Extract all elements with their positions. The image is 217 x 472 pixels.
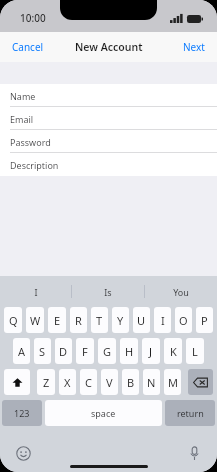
button[interactable]: Email	[0, 107, 217, 130]
button[interactable]: K	[164, 338, 182, 364]
staticText: Email	[10, 113, 34, 125]
button[interactable]: A	[13, 338, 30, 364]
staticText: H	[125, 344, 134, 359]
button[interactable]: Emoji	[14, 444, 32, 462]
button[interactable]: L	[186, 338, 204, 364]
staticText: R	[75, 313, 82, 328]
staticText: S	[39, 344, 46, 359]
button[interactable]: Description	[0, 153, 217, 176]
staticText: L	[192, 344, 198, 359]
button[interactable]: U	[133, 307, 150, 333]
staticText: X	[64, 375, 71, 390]
button[interactable]: Y	[112, 307, 129, 333]
staticText: B	[127, 375, 135, 390]
button[interactable]: Password	[0, 130, 217, 153]
button[interactable]: return	[165, 400, 215, 426]
staticText: 123	[14, 407, 30, 419]
staticText: T	[96, 313, 103, 328]
staticText: space	[91, 407, 116, 419]
button[interactable]: W	[26, 307, 44, 333]
staticText: Y	[117, 313, 124, 328]
button[interactable]: R	[70, 307, 87, 333]
button[interactable]: J	[142, 338, 160, 364]
button[interactable]: Backspace	[188, 369, 213, 395]
staticText: D	[59, 344, 68, 359]
button[interactable]: Z	[37, 369, 55, 395]
staticText: New Account	[75, 40, 143, 54]
button[interactable]: Cancel	[0, 34, 56, 60]
button[interactable]: G	[98, 338, 116, 364]
button[interactable]: B	[122, 369, 139, 395]
button[interactable]: F	[76, 338, 94, 364]
button[interactable]: You	[145, 276, 217, 307]
button[interactable]: C	[80, 369, 97, 395]
button[interactable]: M	[164, 369, 181, 395]
button[interactable]: I	[0, 276, 71, 307]
staticText: N	[147, 375, 156, 390]
staticText: C	[85, 375, 92, 390]
button[interactable]: H	[120, 338, 138, 364]
staticText: Description	[10, 159, 59, 171]
staticText: Q	[9, 313, 18, 328]
button[interactable]: I	[154, 307, 171, 333]
button[interactable]: T	[91, 307, 108, 333]
staticText: You	[173, 286, 189, 298]
button[interactable]: Name	[0, 84, 217, 107]
staticText: Is	[104, 286, 112, 298]
staticText: W	[30, 313, 41, 328]
staticText: P	[201, 313, 208, 328]
button[interactable]: Dictation	[185, 444, 203, 462]
staticText: V	[106, 375, 113, 390]
staticText: F	[82, 344, 88, 359]
button[interactable]: E	[48, 307, 66, 333]
button[interactable]: S	[34, 338, 51, 364]
button[interactable]: N	[143, 369, 160, 395]
staticText: K	[170, 344, 177, 359]
button[interactable]: O	[175, 307, 192, 333]
button[interactable]: space	[45, 400, 162, 426]
button[interactable]: 123	[2, 400, 42, 426]
staticText: Name	[10, 90, 36, 102]
button[interactable]: Shift	[4, 369, 30, 395]
button[interactable]: Is	[72, 276, 144, 307]
staticText: U	[137, 313, 146, 328]
staticText: G	[103, 344, 112, 359]
staticText: Password	[10, 136, 51, 148]
button[interactable]: V	[101, 369, 118, 395]
staticText: Z	[43, 375, 50, 390]
staticText: J	[149, 344, 153, 359]
staticText: I	[34, 286, 38, 298]
staticText: return	[177, 407, 204, 419]
staticText: I	[161, 313, 165, 328]
staticText: 10:00	[20, 11, 46, 25]
staticText: Cancel	[12, 40, 44, 54]
button[interactable]: Q	[4, 307, 22, 333]
staticText: M	[168, 375, 178, 390]
staticText: O	[179, 313, 188, 328]
button[interactable]: D	[55, 338, 72, 364]
staticText: E	[54, 313, 61, 328]
staticText: A	[18, 344, 26, 359]
button[interactable]: X	[59, 369, 76, 395]
staticText: Next	[183, 40, 205, 54]
button[interactable]: P	[196, 307, 213, 333]
button[interactable]: Next	[171, 34, 217, 60]
